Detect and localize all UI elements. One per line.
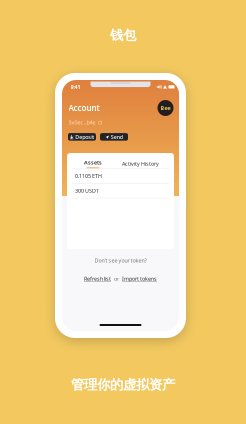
staticText: 9:41 <box>70 83 80 90</box>
staticText: Assets <box>84 159 102 166</box>
button[interactable]: 300 USDT <box>67 184 174 198</box>
staticText: or <box>114 275 119 282</box>
staticText: Import tokens <box>122 275 157 282</box>
button[interactable]: Send <box>100 133 128 141</box>
staticText: Activity History <box>122 160 159 167</box>
button[interactable]: Profile <box>157 100 173 116</box>
staticText: 管理你的虚拟资产 <box>71 377 175 393</box>
button[interactable]: Deposit <box>68 133 96 141</box>
staticText: Deposit <box>75 133 94 140</box>
staticText: 300 USDT <box>75 187 99 194</box>
button[interactable]: Assets <box>84 159 102 168</box>
button[interactable]: 0x0ec...b4e <box>68 119 102 126</box>
button[interactable]: Refresh list <box>84 275 111 282</box>
button[interactable]: 0.1105 ETH <box>67 169 174 183</box>
button[interactable]: Activity History <box>122 160 159 167</box>
staticText: Send <box>111 133 123 140</box>
staticText: 0x0ec...b4e <box>68 119 95 126</box>
staticText: 0.1105 ETH <box>75 172 102 179</box>
staticText: Account <box>68 103 99 113</box>
staticText: Refresh list <box>84 275 111 282</box>
staticText: Bee <box>160 104 170 112</box>
staticText: Don't see your token? <box>94 257 146 264</box>
button[interactable]: Import tokens <box>122 275 157 282</box>
staticText: 钱包 <box>110 27 136 43</box>
